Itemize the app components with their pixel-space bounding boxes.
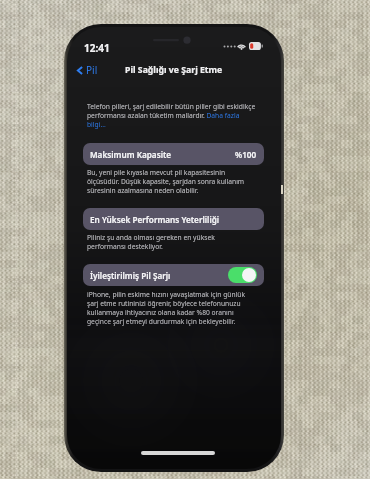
button[interactable]: Optimized battery charging toggle: [228, 267, 257, 283]
button[interactable]: Back: [67, 61, 106, 79]
staticText: Piliniz şu anda olması gereken en yüksek…: [87, 233, 253, 251]
staticText: Pil: [86, 63, 98, 77]
button[interactable]: En Yüksek Performans Yeterliliği: [83, 208, 264, 230]
staticText: Pil Sağlığı ve Şarj Etme: [125, 64, 223, 76]
staticText: İyileştirilmiş Pil Şarjı: [90, 270, 171, 281]
button[interactable]: Maksimum Kapasite: [83, 143, 264, 165]
staticText: Telefon pilleri, şarj edilebilir bütün p…: [87, 102, 259, 129]
staticText: 12:41: [84, 41, 110, 55]
button[interactable]: İyileştirilmiş Pil Şarjı: [83, 264, 264, 286]
other: Back: [77, 65, 83, 76]
staticText: %100: [235, 149, 257, 160]
staticText: iPhone, pilin eskime hızını yavaşlatmak …: [87, 290, 253, 326]
staticText: Bu, yeni pile kıyasla mevcut pil kapasit…: [87, 168, 253, 195]
staticText: En Yüksek Performans Yeterliliği: [90, 214, 220, 225]
staticText: Maksimum Kapasite: [90, 149, 172, 160]
